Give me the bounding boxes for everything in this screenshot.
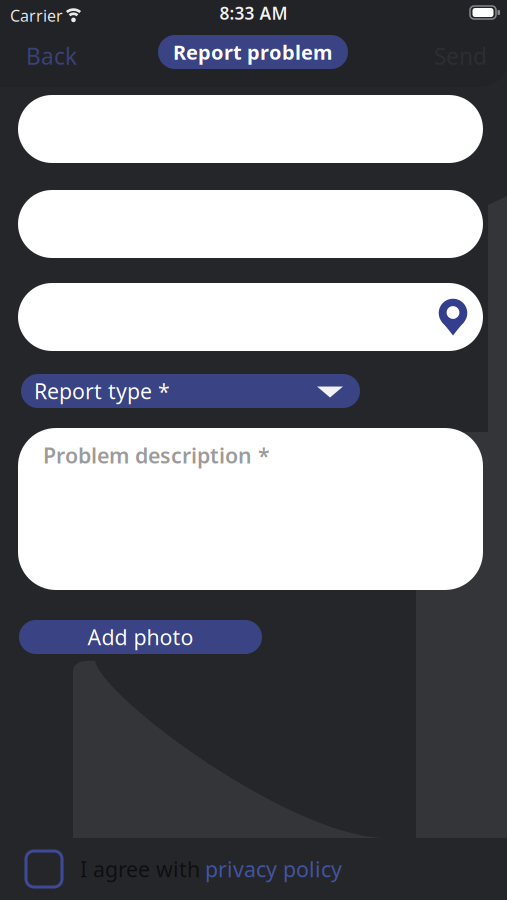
button[interactable]: Address field (18, 283, 483, 351)
staticText: Problem description * (43, 441, 270, 469)
staticText: Send (434, 41, 487, 71)
button[interactable]: Add photo (19, 620, 262, 654)
staticText: I agree with (80, 855, 200, 883)
button[interactable]: Text field (18, 190, 483, 258)
staticText: Back (26, 41, 77, 71)
staticText: Carrier (10, 5, 63, 26)
button[interactable]: Pick location (438, 298, 468, 336)
staticText: privacy policy (205, 855, 342, 883)
button[interactable]: Back (26, 41, 77, 71)
button[interactable]: Report problem (158, 35, 348, 69)
staticText: Add photo (87, 623, 193, 651)
button[interactable]: I agree with privacy policy (26, 851, 342, 887)
staticText: 8:33 AM (219, 1, 287, 24)
button[interactable]: Text field (18, 95, 483, 163)
button[interactable]: Report type * (21, 374, 360, 408)
button[interactable]: Problem description (18, 428, 483, 590)
staticText: Report problem (173, 39, 333, 65)
staticText: Report type * (34, 377, 170, 405)
button[interactable]: Send (434, 41, 487, 71)
